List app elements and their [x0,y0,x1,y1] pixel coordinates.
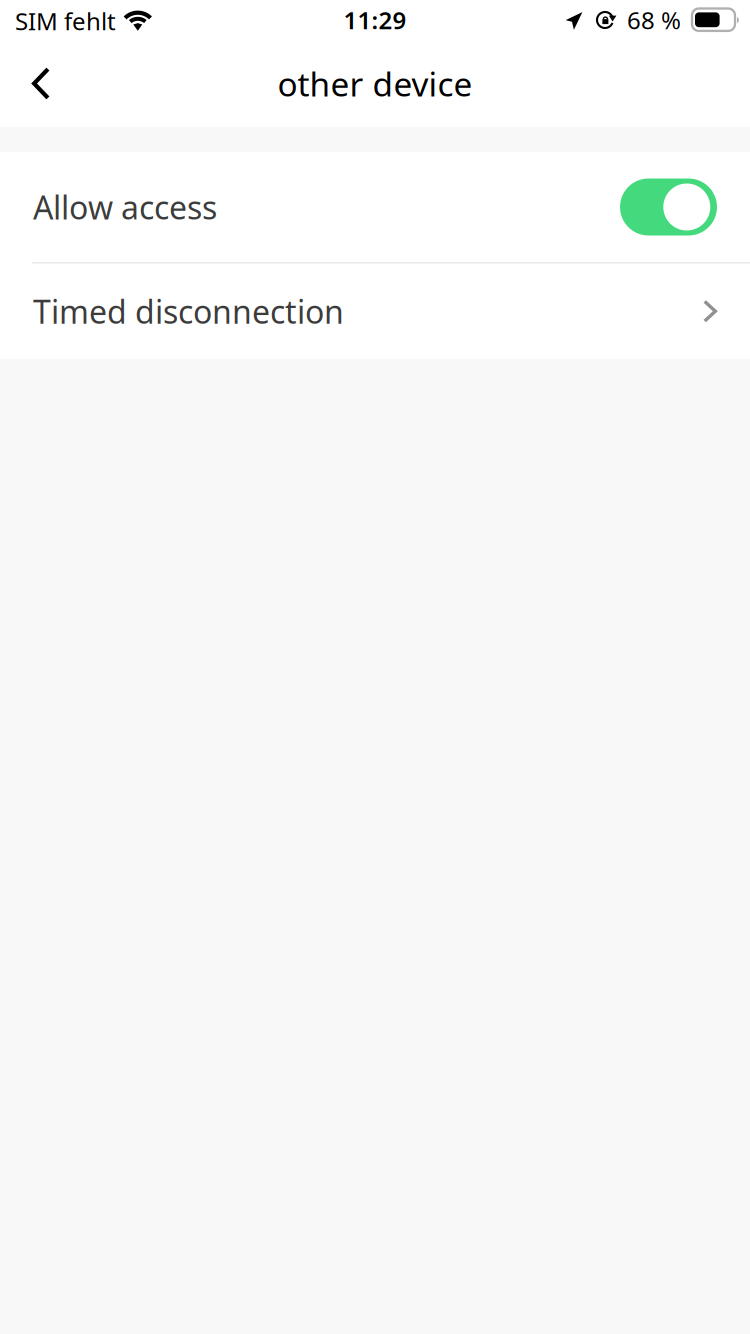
button[interactable]: Timed disconnection [0,263,750,359]
staticText: other device [277,61,472,106]
staticText: Timed disconnection [33,290,344,332]
button[interactable]: Back [0,56,76,115]
staticText: SIM fehlt [15,5,116,37]
button[interactable]: Allow access [0,152,750,262]
staticText: Allow access [33,186,217,228]
staticText: 11:29 [343,4,406,36]
staticText: 68 % [627,4,681,36]
